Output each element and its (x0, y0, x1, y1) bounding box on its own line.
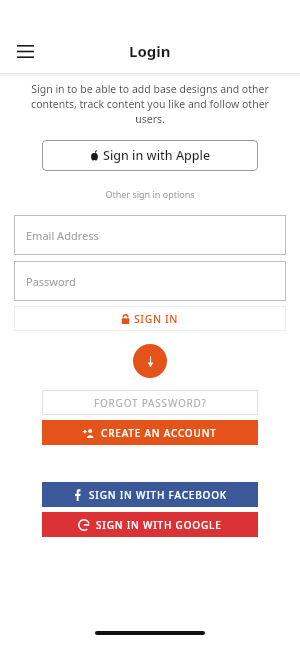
staticText: CREATE AN ACCOUNT (101, 426, 217, 440)
button[interactable]: CREATE AN ACCOUNT (42, 420, 258, 445)
button[interactable]: Sign in with Apple (42, 140, 258, 171)
staticText: Sign in to be able to add base designs a… (16, 82, 284, 126)
staticText: SIGN IN WITH FACEBOOK (89, 488, 227, 502)
button[interactable]: SIGN IN WITH FACEBOOK (42, 482, 258, 507)
button[interactable]: Menu (6, 32, 44, 70)
staticText: Login (129, 41, 171, 61)
button[interactable]: Password (14, 261, 286, 301)
button[interactable]: SIGN IN (14, 306, 286, 331)
staticText: SIGN IN WITH GOOGLE (96, 518, 222, 532)
button[interactable]: SIGN IN WITH GOOGLE (42, 512, 258, 537)
staticText: Email Address (26, 228, 99, 243)
staticText: Sign in with Apple (103, 147, 211, 164)
button[interactable]: FORGOT PASSWORD? (42, 390, 258, 415)
button[interactable]: Email Address (14, 215, 286, 255)
staticText: Other sign in options (0, 188, 300, 200)
staticText: SIGN IN (134, 312, 179, 326)
staticText: Password (26, 274, 76, 289)
staticText: FORGOT PASSWORD? (94, 396, 207, 410)
button[interactable]: Scroll down (133, 344, 167, 378)
